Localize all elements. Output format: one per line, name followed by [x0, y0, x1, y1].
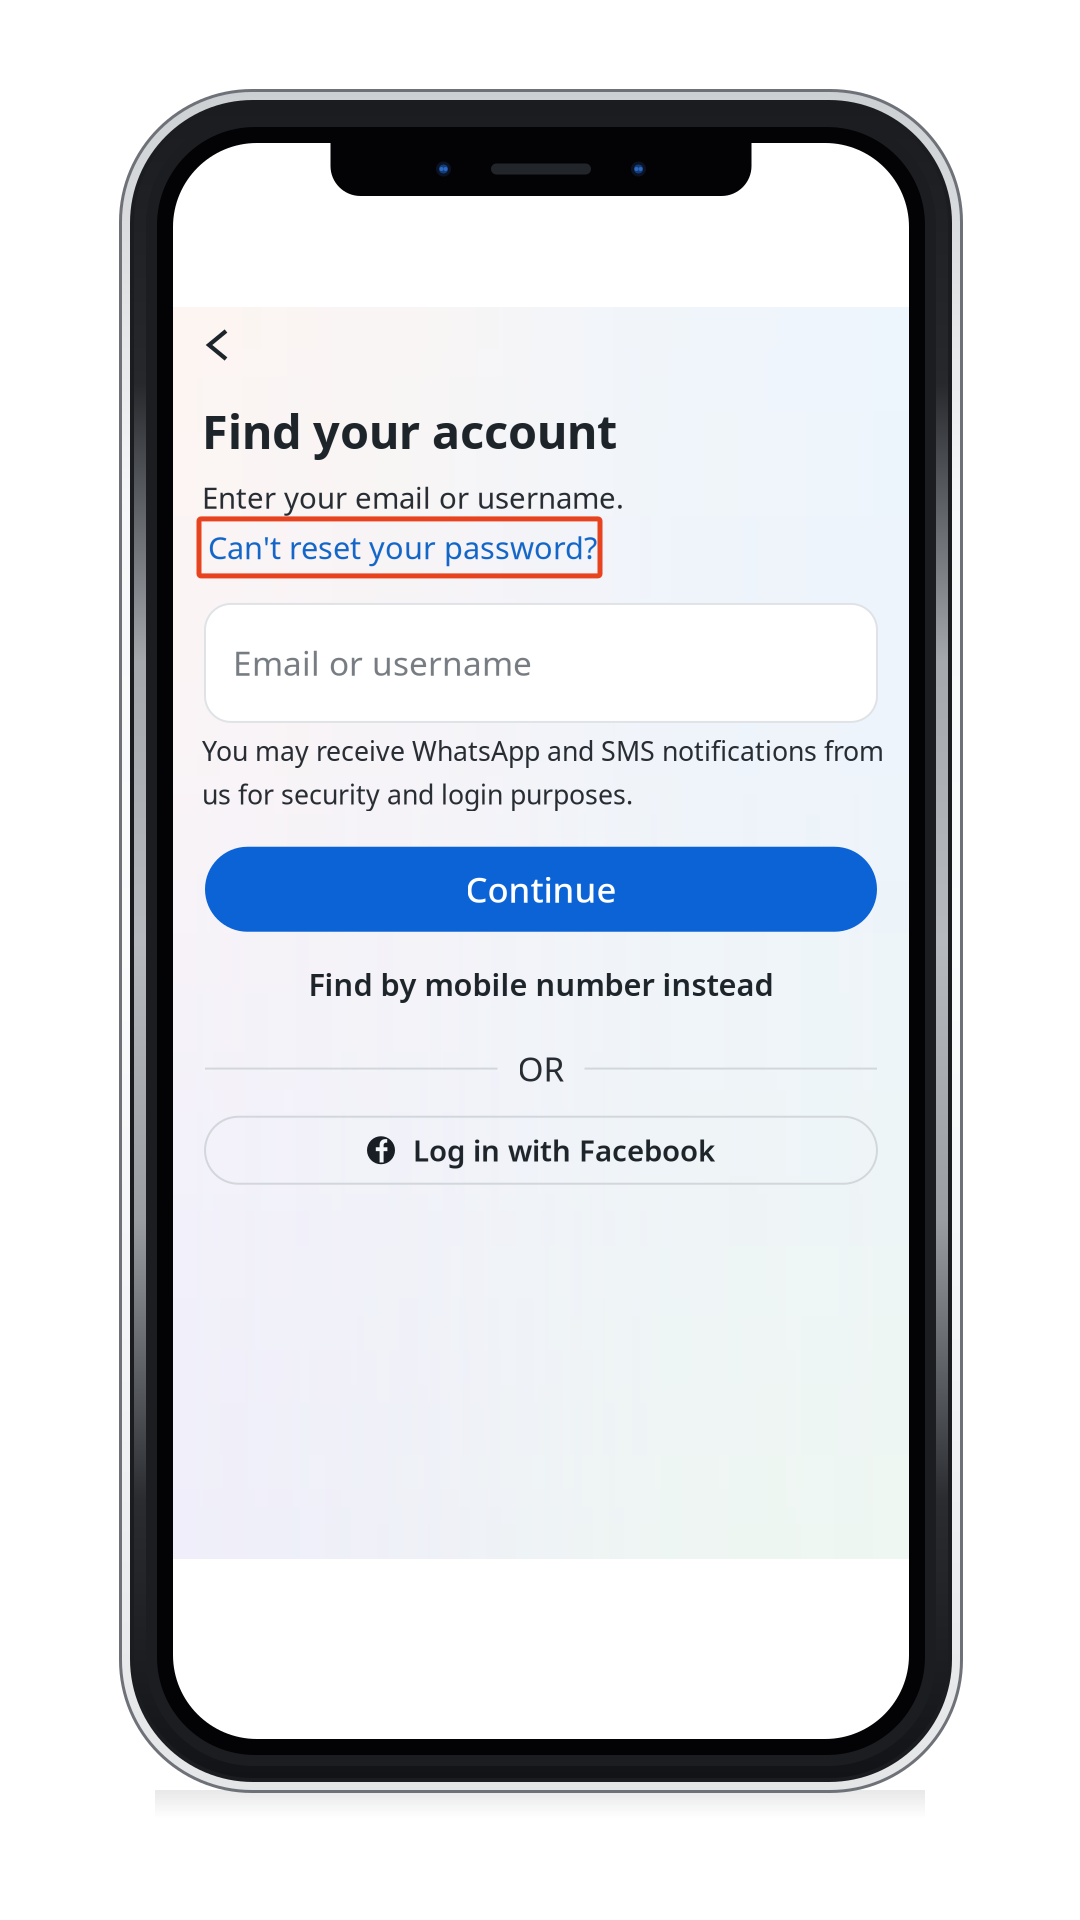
staticText: You may receive WhatsApp and SMS notific… — [202, 733, 884, 768]
staticText: Can't reset your password? — [208, 527, 597, 568]
button[interactable]: Find by mobile number instead — [173, 932, 909, 1036]
staticText: Find your account — [202, 400, 617, 462]
staticText: Find by mobile number instead — [308, 964, 773, 1004]
button[interactable]: Can't reset your password? — [173, 517, 600, 576]
staticText: Log in with Facebook — [413, 1131, 715, 1170]
staticText: OR — [517, 1046, 564, 1091]
button[interactable]: Log in with Facebook — [173, 1091, 909, 1184]
staticText: Enter your email or username. — [202, 478, 624, 517]
staticText: Email or username — [233, 641, 532, 685]
button[interactable]: Continue — [173, 812, 909, 932]
button[interactable]: Back — [173, 307, 252, 374]
staticText: us for security and login purposes. — [202, 776, 633, 812]
staticText: Continue — [465, 866, 616, 912]
